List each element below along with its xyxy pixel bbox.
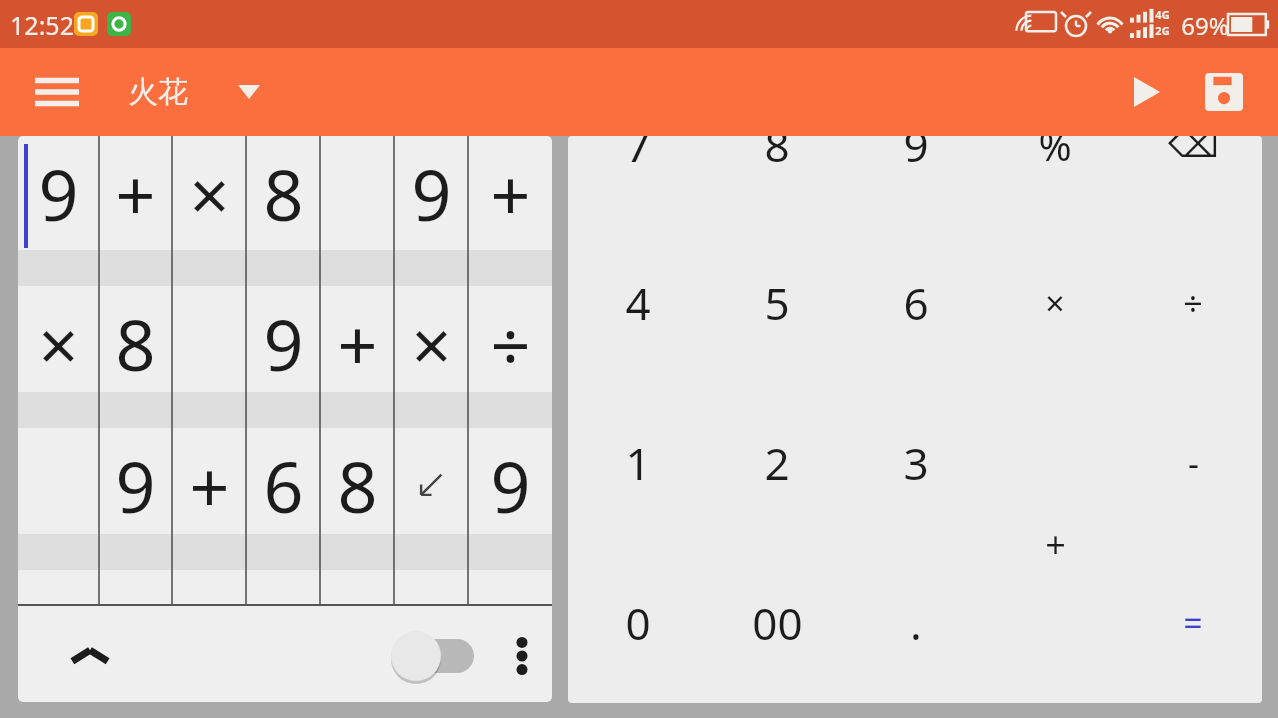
button[interactable]: 4: [576, 263, 700, 343]
staticText: +: [189, 438, 230, 533]
staticText: 8: [337, 586, 378, 606]
staticText: 8: [337, 438, 378, 533]
staticText: +: [490, 146, 531, 241]
staticText: %: [1038, 136, 1072, 172]
button[interactable]: .: [18, 570, 99, 606]
staticText: .: [422, 586, 441, 606]
button[interactable]: 9: [854, 136, 978, 185]
button[interactable]: .: [468, 570, 552, 606]
staticText: .: [126, 586, 145, 606]
staticText: 00: [752, 593, 803, 653]
staticText: 4G: [1155, 7, 1170, 22]
button[interactable]: 1: [576, 423, 700, 503]
button[interactable]: 9: [246, 286, 320, 400]
staticText: 0: [625, 593, 651, 653]
staticText: 2G: [1155, 23, 1170, 38]
button[interactable]: 7: [576, 136, 700, 185]
button[interactable]: More options: [496, 632, 548, 680]
staticText: -: [1188, 440, 1199, 486]
button[interactable]: 6: [246, 428, 320, 542]
staticText: .: [501, 586, 520, 606]
button[interactable]: 3: [854, 423, 978, 503]
staticText: ×: [189, 146, 230, 241]
button[interactable]: 8: [320, 428, 394, 542]
staticText: 6: [903, 273, 929, 333]
button[interactable]: 火花: [128, 64, 260, 120]
staticText: ×: [1045, 280, 1065, 326]
button[interactable]: +: [993, 504, 1117, 584]
staticText: 火花: [128, 73, 188, 111]
button[interactable]: ÷: [1131, 263, 1255, 343]
button[interactable]: ×: [18, 286, 99, 400]
button[interactable]: 8: [99, 286, 172, 400]
button[interactable]: [394, 428, 468, 542]
staticText: 12:52: [10, 8, 74, 42]
button[interactable]: 8: [320, 570, 394, 606]
button[interactable]: +: [99, 136, 172, 250]
staticText: 8: [764, 136, 790, 175]
staticText: 6: [263, 438, 304, 533]
button[interactable]: 8: [715, 136, 839, 185]
staticText: 8: [189, 586, 230, 606]
button[interactable]: .: [99, 570, 172, 606]
staticText: +: [337, 296, 378, 391]
button[interactable]: 9: [394, 136, 468, 250]
staticText: 9: [903, 136, 929, 175]
button[interactable]: +: [468, 136, 552, 250]
button[interactable]: ÷: [468, 286, 552, 400]
staticText: ×: [38, 296, 79, 391]
staticText: 9: [411, 146, 452, 241]
staticText: 1: [625, 433, 651, 493]
staticText: 8: [263, 146, 304, 241]
button[interactable]: .: [394, 570, 468, 606]
staticText: 9: [490, 438, 531, 533]
button[interactable]: Collapse: [54, 632, 126, 680]
staticText: ⌫: [1168, 136, 1219, 166]
staticText: 7: [625, 136, 651, 175]
button[interactable]: 9: [18, 136, 99, 250]
staticText: 5: [764, 273, 790, 333]
button[interactable]: 0: [576, 583, 700, 663]
staticText: +: [1045, 520, 1066, 569]
button[interactable]: 2: [715, 423, 839, 503]
staticText: ×: [411, 296, 452, 391]
button[interactable]: Save: [1196, 68, 1252, 116]
button[interactable]: 8: [246, 136, 320, 250]
button[interactable]: ⌫: [1131, 136, 1255, 185]
button[interactable]: ×: [394, 286, 468, 400]
button[interactable]: +: [172, 428, 246, 542]
staticText: 9: [38, 146, 79, 241]
button[interactable]: Menu: [26, 68, 88, 116]
button[interactable]: ×: [172, 136, 246, 250]
staticText: .: [910, 593, 922, 653]
staticText: 3: [903, 433, 929, 493]
staticText: 69%: [1181, 9, 1229, 42]
button[interactable]: 9: [99, 428, 172, 542]
button[interactable]: 6: [854, 263, 978, 343]
button[interactable]: 9: [468, 428, 552, 542]
staticText: .: [49, 586, 68, 606]
staticText: ÷: [490, 296, 531, 391]
staticText: 2: [764, 433, 790, 493]
button[interactable]: 5: [715, 263, 839, 343]
button[interactable]: 8: [172, 570, 246, 606]
button[interactable]: Run: [1118, 68, 1176, 116]
button[interactable]: Toggle: [386, 632, 482, 680]
button[interactable]: +: [320, 286, 394, 400]
button[interactable]: ×: [993, 263, 1117, 343]
button[interactable]: %: [993, 136, 1117, 185]
staticText: 9: [263, 296, 304, 391]
button[interactable]: -: [1131, 423, 1255, 503]
staticText: =: [1183, 600, 1203, 646]
staticText: 9: [115, 438, 156, 533]
button[interactable]: .: [854, 583, 978, 663]
staticText: ÷: [1183, 280, 1203, 326]
staticText: +: [115, 146, 156, 241]
button[interactable]: =: [1131, 583, 1255, 663]
button[interactable]: 00: [715, 583, 839, 663]
staticText: 4: [625, 273, 651, 333]
staticText: 8: [115, 296, 156, 391]
